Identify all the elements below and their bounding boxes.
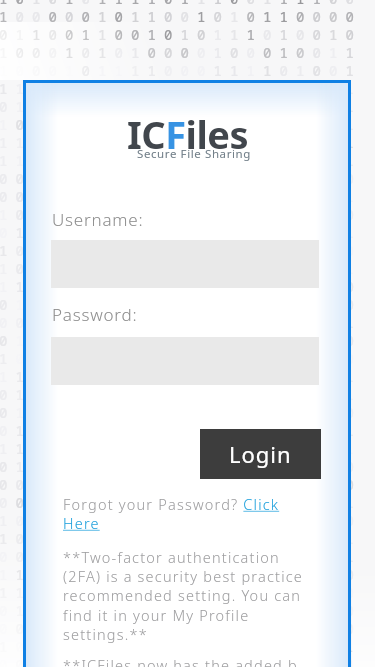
- staticText: 010110000000110111111111: [0, 223, 375, 242]
- staticText: **Two-factor authentication: [63, 547, 280, 567]
- staticText: 100100000100000010100100: [0, 295, 375, 314]
- staticText: 011010100010100011010001: [0, 529, 375, 548]
- staticText: Password:: [52, 303, 138, 326]
- staticText: 011010101111011100111100: [0, 0, 375, 8]
- staticText: 111101100000011011000100: [0, 565, 375, 584]
- staticText: 010101111101000000111111: [0, 421, 375, 440]
- staticText: Forgot your Password? Click: [63, 494, 280, 514]
- staticText: 111100010010011010000011: [0, 133, 375, 152]
- staticText: 110101000100000110100001: [0, 97, 375, 116]
- staticText: 010100100101011010010010: [0, 331, 375, 350]
- staticText: **ICFiles now has the added b: [63, 655, 298, 667]
- staticText: (2FA) is a security best practice: [63, 566, 304, 586]
- staticText: 111000001011001010110000: [0, 7, 375, 26]
- staticText: 101001000010101100100100: [0, 205, 375, 224]
- staticText: Username:: [52, 208, 144, 231]
- staticText: recommended setting. You can: [63, 585, 302, 605]
- staticText: 111000101111000111101001: [0, 61, 375, 80]
- button[interactable]: Forgot your Password? Click: [63, 494, 283, 533]
- staticText: settings.**: [63, 624, 148, 644]
- staticText: 011101110110000100100111: [0, 79, 375, 98]
- staticText: 100011000101100101111001: [0, 493, 375, 512]
- staticText: 101110101111100001011111: [0, 367, 375, 386]
- staticText: 000101001110000110011001: [0, 385, 375, 404]
- staticText: 000010001100010011011100: [0, 169, 375, 188]
- staticText: 100001100001001001001001: [0, 187, 375, 206]
- staticText: ICFiles: [127, 108, 248, 160]
- staticText: 001000111100111000100110: [0, 349, 375, 368]
- staticText: 101010110000110111010110: [0, 241, 375, 260]
- button[interactable]: Login: [200, 429, 321, 479]
- staticText: 000000001100110000111011: [0, 313, 375, 332]
- staticText: 001001110110011011011100: [0, 511, 375, 530]
- staticText: 000000100100101111010100: [0, 655, 375, 667]
- staticText: 000100101001000111000000: [0, 457, 375, 476]
- staticText: 010010011110001110101010: [0, 475, 375, 494]
- staticText: 101110011010011010001100: [0, 583, 375, 602]
- staticText: 011001101000010111110101: [0, 115, 375, 134]
- staticText: 000110011001010111010010: [0, 25, 375, 44]
- staticText: 110000110101011111000100: [0, 619, 375, 638]
- staticText: Secure File Sharing: [137, 146, 251, 162]
- staticText: 111111000001111101000011: [0, 151, 375, 170]
- staticText: find it in your My Profile: [63, 605, 250, 625]
- staticText: 000100011000111011011000: [0, 403, 375, 422]
- staticText: Here: [63, 513, 100, 533]
- staticText: 110010101001100001001111: [0, 547, 375, 566]
- staticText: 000111011100100011111100: [0, 601, 375, 620]
- staticText: 111011100101111100001111: [0, 637, 375, 656]
- staticText: 011110011100100100111010: [0, 277, 375, 296]
- staticText: 111001010000000100000011: [0, 259, 375, 278]
- staticText: Login: [229, 439, 292, 469]
- staticText: 101000101010000100010011: [0, 43, 375, 62]
- staticText: 111111111001110000110111: [0, 439, 375, 458]
